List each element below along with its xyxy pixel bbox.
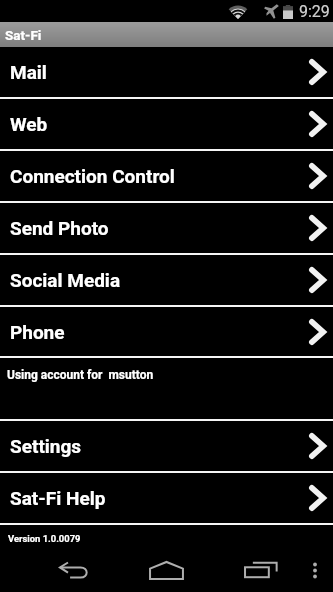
button[interactable]: Sat-Fi: [0, 22, 333, 47]
button[interactable]: More options: [295, 550, 333, 590]
staticText: Sat-Fi Help: [10, 487, 106, 509]
staticText: 9:29: [299, 2, 330, 21]
staticText: Using account for msutton: [7, 368, 154, 382]
button[interactable]: Mail: [0, 47, 333, 97]
button[interactable]: Recent apps: [241, 550, 281, 590]
staticText: Web: [10, 113, 48, 135]
staticText: Social Media: [10, 269, 121, 291]
button[interactable]: Sat-Fi Help: [0, 473, 333, 523]
button[interactable]: Back: [54, 550, 94, 590]
button[interactable]: Connection Control: [0, 151, 333, 201]
staticText: Send Photo: [10, 217, 109, 239]
staticText: Sat-Fi: [5, 27, 42, 43]
button[interactable]: Home: [146, 550, 186, 590]
button[interactable]: Send Photo: [0, 203, 333, 253]
staticText: Phone: [10, 321, 65, 343]
staticText: Mail: [10, 61, 47, 83]
staticText: Settings: [10, 435, 82, 457]
button[interactable]: Phone: [0, 307, 333, 356]
staticText: Version 1.0.0079: [8, 533, 81, 544]
button[interactable]: Social Media: [0, 255, 333, 305]
staticText: Connection Control: [10, 165, 175, 187]
button[interactable]: Web: [0, 99, 333, 149]
button[interactable]: Settings: [0, 421, 333, 471]
